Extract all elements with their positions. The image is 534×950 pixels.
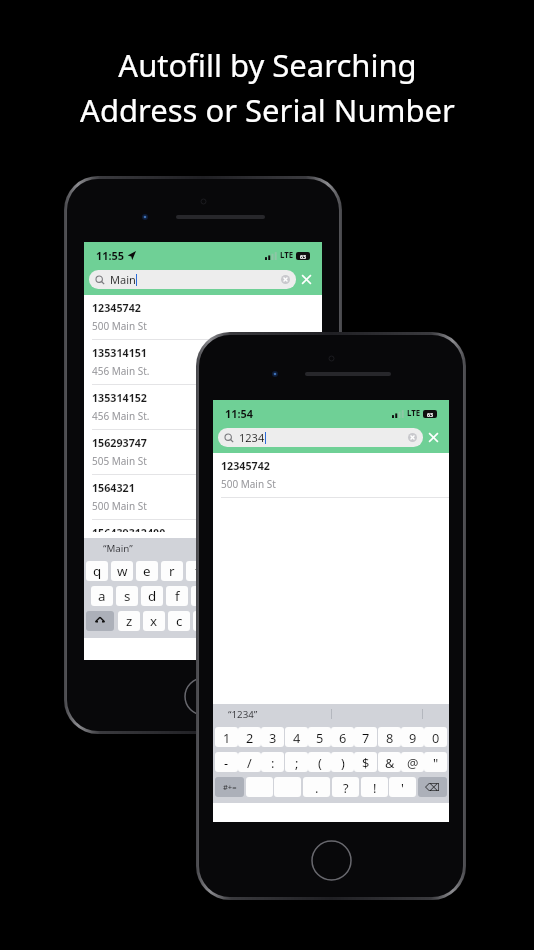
button[interactable]: 5: [308, 727, 331, 747]
button[interactable]: c: [168, 611, 190, 631]
staticText: 11:55: [96, 248, 124, 263]
staticText: :: [271, 754, 275, 771]
button[interactable]: 4: [285, 727, 308, 747]
button[interactable]: 1564321: [84, 475, 322, 519]
staticText: 7: [362, 729, 370, 746]
button[interactable]: g: [191, 586, 213, 606]
button[interactable]: ;: [285, 752, 308, 772]
button[interactable]: e: [136, 561, 158, 581]
staticText: “Main”: [103, 542, 133, 555]
button[interactable]: 135314151: [84, 340, 322, 384]
staticText: 8: [386, 729, 394, 746]
staticText: 1: [223, 729, 231, 746]
button[interactable]: [246, 777, 273, 797]
staticText: 456 Main St.: [92, 409, 150, 423]
staticText: g: [198, 587, 207, 605]
button[interactable]: r: [161, 561, 183, 581]
staticText: a: [98, 587, 106, 605]
button[interactable]: d: [141, 586, 163, 606]
button[interactable]: 7: [354, 727, 377, 747]
button[interactable]: @: [401, 752, 424, 772]
button[interactable]: 9: [401, 727, 424, 747]
button[interactable]: .: [303, 777, 330, 797]
button[interactable]: Close search: [296, 269, 316, 289]
button[interactable]: a: [91, 586, 113, 606]
staticText: !: [373, 779, 377, 796]
button[interactable]: 0: [424, 727, 447, 747]
staticText: Address or Serial Number: [80, 89, 455, 131]
button[interactable]: 12345742: [213, 453, 449, 497]
button[interactable]: 156293747: [84, 430, 322, 474]
staticText: 2: [246, 729, 254, 746]
button[interactable]: 2: [238, 727, 261, 747]
button[interactable]: Main: [89, 270, 296, 289]
staticText: 500 Main St: [92, 319, 147, 333]
button[interactable]: [274, 777, 301, 797]
button[interactable]: (: [308, 752, 331, 772]
staticText: 63: [300, 253, 307, 260]
button[interactable]: 6: [331, 727, 354, 747]
staticText: ": [433, 754, 439, 771]
button[interactable]: 1: [215, 727, 238, 747]
button[interactable]: 135314152: [84, 385, 322, 429]
staticText: ?: [343, 779, 349, 796]
staticText: 156439312400: [92, 526, 166, 532]
staticText: r: [169, 562, 175, 580]
button[interactable]: v: [193, 611, 215, 631]
staticText: 1234: [239, 430, 265, 445]
button[interactable]: ?: [332, 777, 359, 797]
button[interactable]: &: [378, 752, 401, 772]
button[interactable]: $: [354, 752, 377, 772]
staticText: f: [175, 587, 180, 605]
button[interactable]: s: [116, 586, 138, 606]
staticText: d: [148, 587, 157, 605]
staticText: c: [176, 612, 183, 630]
button[interactable]: ": [424, 752, 447, 772]
staticText: ⌫: [425, 781, 440, 793]
staticText: @: [407, 754, 419, 771]
button[interactable]: 3: [261, 727, 284, 747]
button[interactable]: -: [215, 752, 238, 772]
staticText: 156293747: [92, 436, 147, 451]
button[interactable]: t: [186, 561, 208, 581]
button[interactable]: !: [361, 777, 388, 797]
staticText: $: [362, 754, 370, 771]
button[interactable]: 1234: [218, 428, 423, 447]
staticText: LTE: [280, 250, 294, 261]
staticText: /: [247, 754, 252, 771]
button[interactable]: f: [166, 586, 188, 606]
staticText: ': [401, 779, 404, 796]
button[interactable]: ': [389, 777, 416, 797]
staticText: 505 Main St: [92, 454, 147, 468]
button[interactable]: Shift: [86, 611, 114, 631]
button[interactable]: 12345742: [84, 295, 322, 339]
button[interactable]: 156439312400: [84, 520, 322, 538]
button[interactable]: ⌫: [418, 777, 447, 797]
staticText: 12345742: [221, 459, 270, 474]
staticText: ;: [295, 754, 299, 771]
staticText: 5: [316, 729, 324, 746]
staticText: &: [385, 754, 395, 771]
staticText: 3: [269, 729, 277, 746]
staticText: 500 Main St: [221, 477, 276, 491]
staticText: 4: [293, 729, 301, 746]
staticText: 6: [339, 729, 347, 746]
button[interactable]: w: [111, 561, 133, 581]
button[interactable]: #+=: [215, 777, 244, 797]
button[interactable]: 8: [378, 727, 401, 747]
button[interactable]: Close search: [423, 427, 443, 447]
button[interactable]: ): [331, 752, 354, 772]
button[interactable]: :: [261, 752, 284, 772]
button[interactable]: /: [238, 752, 261, 772]
button[interactable]: z: [118, 611, 140, 631]
staticText: LTE: [407, 408, 421, 419]
staticText: 11:54: [225, 406, 253, 421]
staticText: 9: [409, 729, 417, 746]
button[interactable]: q: [86, 561, 108, 581]
staticText: t: [195, 562, 200, 580]
button[interactable]: y: [211, 561, 233, 581]
button[interactable]: x: [143, 611, 165, 631]
staticText: (: [318, 754, 322, 771]
